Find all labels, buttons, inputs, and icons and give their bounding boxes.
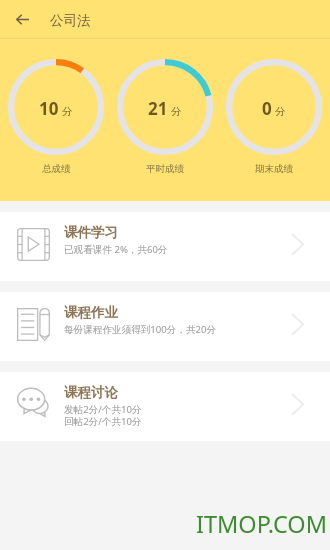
staticText: 课程讨论 (64, 384, 118, 401)
button[interactable]: 课程作业 (0, 292, 330, 361)
staticText: 分 (275, 105, 286, 118)
staticText: 每份课程作业须得到100分，共20分 (64, 323, 217, 336)
button[interactable]: Back (7, 4, 38, 35)
staticText: 10 (39, 97, 59, 120)
staticText: 分 (62, 105, 73, 118)
staticText: 发帖2分/个共10分 回帖2分/个共10分 (64, 403, 142, 428)
staticText: 0 (262, 97, 272, 120)
staticText: 21 (148, 97, 168, 120)
staticText: 平时成绩 (146, 163, 184, 175)
staticText: 课件学习 (64, 224, 118, 241)
staticText: 期末成绩 (255, 163, 293, 175)
staticText: 分 (171, 105, 182, 118)
staticText: ITMOP.COM (196, 508, 328, 540)
staticText: 公司法 (50, 12, 91, 29)
button[interactable]: 课程讨论 (0, 372, 330, 441)
staticText: 总成绩 (42, 163, 71, 175)
button[interactable]: 课件学习 (0, 212, 330, 281)
staticText: 课程作业 (64, 304, 118, 321)
staticText: 已观看课件 2%，共60分 (64, 243, 168, 256)
